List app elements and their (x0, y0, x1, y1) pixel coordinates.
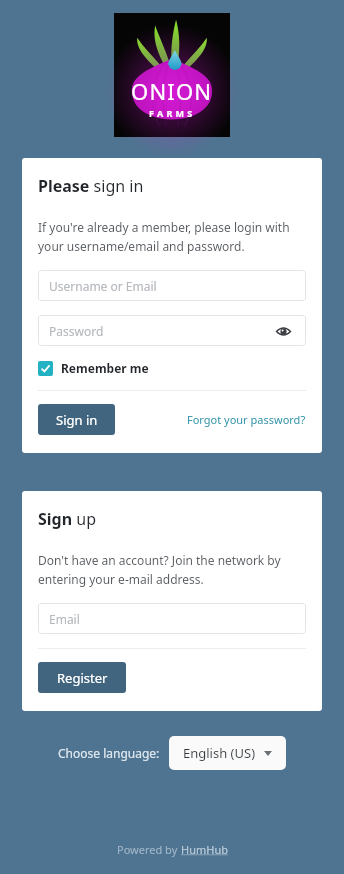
staticText: Sign in (56, 411, 98, 429)
button[interactable]: Password (38, 315, 306, 346)
button[interactable]: Show password (271, 319, 295, 343)
staticText: Choose language: (58, 745, 160, 761)
button[interactable]: Email (38, 603, 306, 634)
staticText: Email (49, 611, 80, 627)
staticText: Please sign in (38, 175, 144, 197)
staticText: Sign up (38, 508, 97, 530)
button[interactable]: Register (38, 662, 126, 693)
staticText: English (US) (183, 744, 256, 762)
button[interactable]: Forgot your password? (187, 412, 306, 427)
staticText: Register (57, 669, 108, 687)
button[interactable]: Remember me (38, 360, 149, 376)
staticText: FARMS (149, 107, 196, 119)
staticText: Powered by (117, 842, 181, 857)
button[interactable]: HumHub (181, 842, 228, 857)
staticText: Remember me (61, 360, 149, 376)
staticText: ONION (131, 76, 213, 106)
staticText: If you're already a member, please login… (38, 219, 306, 254)
button[interactable]: Username or Email (38, 270, 306, 301)
staticText: Don't have an account? Join the network … (38, 552, 306, 587)
button[interactable]: Sign in (38, 404, 115, 435)
button[interactable]: English (US) (169, 736, 286, 770)
staticText: Password (49, 323, 104, 339)
staticText: Username or Email (49, 278, 157, 294)
